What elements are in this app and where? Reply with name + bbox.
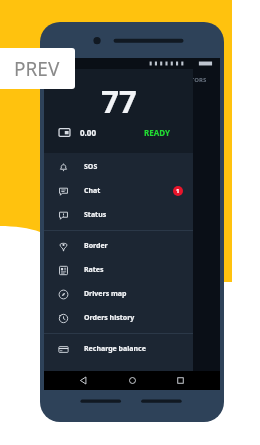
staticText: PREV	[14, 56, 60, 82]
staticText: Border	[84, 241, 108, 251]
staticText: Rates	[84, 265, 104, 275]
button[interactable]: Drivers map	[44, 282, 193, 306]
staticText: Status	[84, 210, 107, 220]
button[interactable]: Chat	[44, 179, 193, 203]
staticText: READY	[144, 127, 171, 138]
button[interactable]: Orders history	[44, 306, 193, 330]
staticText: 1	[176, 187, 180, 195]
button[interactable]: Border	[44, 234, 193, 258]
button[interactable]: Home	[123, 371, 142, 390]
staticText: SOS	[84, 162, 98, 172]
staticText: 77	[101, 80, 137, 122]
staticText: Drivers map	[84, 289, 127, 299]
staticText: Orders history	[84, 313, 135, 323]
staticText: 0.00	[80, 127, 96, 138]
button[interactable]: Rates	[44, 258, 193, 282]
staticText: Chat	[84, 186, 101, 196]
staticText: Recharge balance	[84, 344, 146, 354]
staticText: CTORS	[187, 76, 207, 84]
button[interactable]: Status	[44, 203, 193, 227]
button[interactable]: Back	[74, 371, 93, 390]
button[interactable]: Recents	[171, 371, 190, 390]
button[interactable]: Recharge balance	[44, 337, 193, 361]
button[interactable]: SOS	[44, 155, 193, 179]
